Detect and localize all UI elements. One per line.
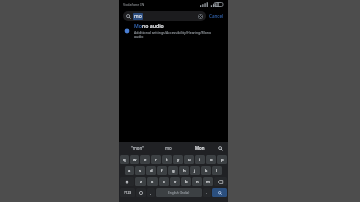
button[interactable]: y xyxy=(173,155,183,164)
staticText: mo xyxy=(165,145,172,151)
staticText: c xyxy=(163,179,166,185)
button[interactable]: h xyxy=(179,166,189,175)
button[interactable]: b xyxy=(181,177,191,186)
button[interactable]: Search xyxy=(123,11,206,21)
button[interactable]: z xyxy=(135,177,146,186)
button[interactable]: k xyxy=(201,166,211,175)
button[interactable]: v xyxy=(170,177,180,186)
staticText: l xyxy=(216,168,218,174)
staticText: mo xyxy=(134,13,142,20)
button[interactable]: a xyxy=(125,166,134,175)
staticText: . xyxy=(206,190,208,195)
staticText: f xyxy=(161,168,163,174)
staticText: Mono audio xyxy=(134,22,164,29)
button[interactable]: l xyxy=(212,166,222,175)
staticText: ?123 xyxy=(124,190,132,195)
button[interactable]: g xyxy=(168,166,178,175)
button[interactable]: r xyxy=(151,155,161,164)
button[interactable]: Search suggestions xyxy=(215,142,225,154)
staticText: s xyxy=(139,168,142,174)
other: Search xyxy=(126,14,131,19)
staticText: b xyxy=(185,179,188,185)
staticText: n xyxy=(196,179,199,185)
button[interactable]: m xyxy=(203,177,213,186)
button[interactable]: Shift xyxy=(120,177,134,186)
button[interactable]: d xyxy=(146,166,156,175)
staticText: Vodafone IN xyxy=(123,2,145,7)
button[interactable]: u xyxy=(184,155,194,164)
button[interactable]: Clear xyxy=(198,14,203,19)
staticText: English (India) xyxy=(168,191,190,195)
button[interactable]: Comma xyxy=(147,188,155,197)
staticText: y xyxy=(177,157,180,163)
other: Mono audio icon xyxy=(124,28,130,34)
staticText: p xyxy=(221,157,224,163)
button[interactable]: n xyxy=(192,177,202,186)
staticText: m xyxy=(206,179,210,185)
staticText: x xyxy=(151,179,154,185)
button[interactable]: Mono audio icon xyxy=(119,22,228,39)
staticText: v xyxy=(174,179,177,185)
button[interactable]: e xyxy=(140,155,150,164)
staticText: i xyxy=(199,157,201,163)
button[interactable]: w xyxy=(130,155,139,164)
button[interactable]: Backspace xyxy=(214,177,227,186)
button[interactable]: ?123 xyxy=(120,188,135,197)
staticText: r xyxy=(155,157,157,163)
button[interactable]: mo xyxy=(153,142,184,154)
staticText: o xyxy=(210,157,213,163)
staticText: Cancel xyxy=(209,13,224,19)
staticText: u xyxy=(188,157,191,163)
button[interactable]: q xyxy=(120,155,129,164)
staticText: w xyxy=(133,157,137,163)
staticText: t xyxy=(166,157,168,163)
staticText: Mon xyxy=(195,145,205,151)
staticText: a xyxy=(128,168,131,174)
staticText: "mon" xyxy=(131,145,144,151)
button[interactable]: i xyxy=(195,155,205,164)
button[interactable]: x xyxy=(147,177,158,186)
staticText: k xyxy=(205,168,208,174)
button[interactable]: j xyxy=(190,166,200,175)
button[interactable]: "mon" xyxy=(122,142,153,154)
button[interactable]: p xyxy=(217,155,227,164)
button[interactable]: Period xyxy=(203,188,211,197)
staticText: z xyxy=(140,179,142,185)
button[interactable]: f xyxy=(157,166,167,175)
staticText: g xyxy=(172,168,175,174)
button[interactable]: Mon xyxy=(184,142,215,154)
staticText: h xyxy=(183,168,186,174)
button[interactable]: Cancel xyxy=(208,13,225,19)
staticText: Additional settings/Accessibility/Hearin… xyxy=(134,30,212,39)
button[interactable]: s xyxy=(135,166,145,175)
staticText: , xyxy=(150,190,152,195)
button[interactable]: c xyxy=(159,177,169,186)
button[interactable]: Search xyxy=(212,188,227,197)
staticText: q xyxy=(123,157,126,163)
button[interactable]: o xyxy=(206,155,216,164)
staticText: j xyxy=(194,168,196,174)
button[interactable]: Space xyxy=(156,188,202,197)
button[interactable]: Emoji xyxy=(136,188,146,197)
button[interactable]: t xyxy=(162,155,172,164)
staticText: d xyxy=(150,168,153,174)
staticText: e xyxy=(144,157,147,163)
